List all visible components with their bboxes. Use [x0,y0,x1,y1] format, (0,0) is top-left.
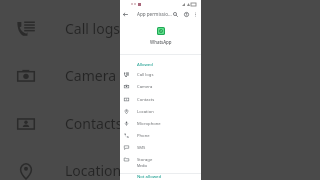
button[interactable]: Search [170,9,181,20]
staticText: Microphone [137,121,161,127]
button[interactable]: Phone [120,129,201,141]
button[interactable]: Microphone [120,117,201,129]
button[interactable]: Location [120,105,201,117]
staticText: Media [137,163,147,168]
button[interactable]: SMS [120,141,201,153]
button[interactable]: Call logs [0,12,320,44]
staticText: Allowed [137,62,153,68]
button[interactable]: Location [0,154,320,180]
button[interactable]: More options [190,9,201,20]
button[interactable]: Contacts [0,107,320,139]
staticText: WhatsApp [150,39,172,45]
button[interactable]: Help [181,9,192,20]
staticText: Contacts [137,97,155,103]
button[interactable]: Camera [0,59,320,91]
staticText: Call logs [65,19,120,38]
button[interactable]: Storage [120,155,201,167]
staticText: App permissio... [137,11,172,17]
button[interactable]: Contacts [120,93,201,105]
staticText: Location [65,161,122,180]
staticText: Not allowed [137,174,162,180]
button[interactable]: Back [120,9,131,20]
staticText: Camera [65,66,117,85]
staticText: Location [137,109,154,115]
staticText: Camera [137,84,153,90]
staticText: Contacts [65,114,123,133]
staticText: Phone [137,133,150,139]
button[interactable]: Call logs [120,68,201,80]
staticText: Call logs [137,72,154,78]
staticText: Storage [137,157,153,163]
staticText: SMS [137,145,146,151]
button[interactable]: Camera [120,80,201,92]
